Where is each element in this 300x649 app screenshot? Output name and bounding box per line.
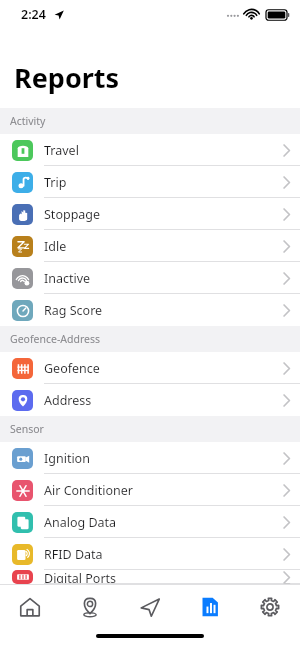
staticText: Sensor — [10, 422, 44, 436]
button[interactable]: Trip — [0, 166, 300, 198]
staticText: Geofence-Address — [10, 332, 101, 346]
button[interactable]: RFID Data — [0, 538, 300, 570]
button[interactable]: Reports — [180, 585, 240, 629]
staticText: Air Conditioner — [44, 482, 133, 499]
staticText: Geofence — [44, 360, 100, 377]
button[interactable]: Travel — [0, 134, 300, 166]
staticText: Reports — [14, 59, 120, 96]
staticText: Analog Data — [44, 514, 117, 531]
staticText: Activity — [10, 114, 46, 128]
staticText: Rag Score — [44, 302, 103, 319]
staticText: RFID Data — [44, 546, 103, 563]
staticText: Travel — [44, 142, 79, 159]
staticText: Trip — [44, 174, 67, 191]
button[interactable]: Digital Ports — [0, 570, 300, 584]
staticText: 2:24 — [21, 6, 46, 23]
button[interactable]: Geofence — [0, 352, 300, 384]
button[interactable]: Stoppage — [0, 198, 300, 230]
button[interactable]: Places — [60, 585, 120, 629]
button[interactable]: Inactive — [0, 262, 300, 294]
staticText: Digital Ports — [44, 570, 117, 584]
button[interactable]: Settings — [240, 585, 300, 629]
button[interactable]: Home — [0, 585, 60, 629]
staticText: Ignition — [44, 450, 90, 467]
button[interactable]: Ignition — [0, 442, 300, 474]
button[interactable]: Idle — [0, 230, 300, 262]
staticText: Inactive — [44, 270, 91, 287]
button[interactable]: Address — [0, 384, 300, 416]
button[interactable]: Navigate — [120, 585, 180, 629]
button[interactable]: Air Conditioner — [0, 474, 300, 506]
staticText: Address — [44, 392, 92, 409]
button[interactable]: Analog Data — [0, 506, 300, 538]
button[interactable]: Rag Score — [0, 294, 300, 326]
staticText: Idle — [44, 238, 67, 255]
staticText: Stoppage — [44, 206, 101, 223]
